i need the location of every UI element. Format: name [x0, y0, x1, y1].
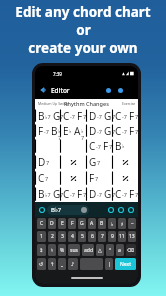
staticText: B [100, 220, 104, 227]
button[interactable]: ♯ [118, 218, 126, 229]
staticText: or [76, 21, 91, 39]
staticText: G [53, 187, 60, 201]
button[interactable]: D [86, 108, 112, 123]
button[interactable]: F [86, 170, 112, 186]
button[interactable]: Action 0 [106, 205, 116, 215]
staticText: G [104, 187, 112, 201]
button[interactable]: D [86, 123, 112, 138]
button[interactable]: F [68, 218, 76, 229]
button[interactable]: C [112, 108, 138, 123]
button[interactable]: △ [96, 244, 104, 256]
staticText: B♭7 [51, 206, 62, 214]
staticText: D [89, 124, 97, 138]
button[interactable]: C [37, 218, 46, 229]
staticText: B [51, 124, 58, 138]
button[interactable]: ♪ [68, 258, 78, 270]
button[interactable]: Next [115, 258, 136, 270]
button[interactable]: C [60, 186, 86, 202]
button[interactable]: B [35, 108, 60, 123]
staticText: 7 [109, 143, 112, 150]
button[interactable] [60, 170, 86, 186]
staticText: add [84, 247, 93, 254]
button[interactable]: Transpose [37, 205, 47, 215]
staticText: 7 [45, 175, 49, 182]
button[interactable]: ⌫ [126, 244, 136, 256]
button[interactable]: 4 [68, 231, 76, 242]
staticText: B [38, 187, 45, 201]
button[interactable]: | [105, 258, 113, 270]
button[interactable]: 13 [128, 231, 136, 242]
staticText: △ [98, 247, 102, 253]
button[interactable]: ♮ [48, 244, 56, 256]
staticText: C [115, 187, 122, 201]
button[interactable]: D [48, 218, 56, 229]
staticText: -7 [70, 113, 75, 120]
button[interactable]: E [58, 218, 66, 229]
button[interactable]: E [60, 123, 86, 138]
button[interactable] [60, 154, 86, 170]
button[interactable]: ⎵ [58, 258, 66, 270]
button[interactable]: 7 [98, 231, 106, 242]
button[interactable]: D [86, 186, 112, 202]
button[interactable]: – [128, 218, 136, 229]
staticText: Exercise [122, 101, 136, 106]
staticText: 7 [135, 128, 138, 135]
button[interactable]: G [78, 218, 86, 229]
staticText: Next [120, 261, 131, 268]
staticText: C [63, 109, 70, 123]
staticText: 7 [135, 113, 138, 120]
button[interactable]: 6 [88, 231, 96, 242]
button[interactable] [80, 258, 103, 270]
button[interactable]: Undo [102, 84, 114, 96]
staticText: 7 [83, 191, 86, 198]
button[interactable]: 9 [108, 231, 116, 242]
button[interactable]: % [58, 244, 66, 256]
button[interactable]: B♭7 [47, 205, 89, 215]
button[interactable]: G [86, 154, 112, 170]
button[interactable]: C [60, 108, 86, 123]
button[interactable]: 3 [58, 231, 66, 242]
staticText: 7 [46, 159, 50, 166]
staticText: F [103, 139, 109, 153]
staticText: G [53, 109, 60, 123]
button[interactable]: C [35, 170, 60, 186]
button[interactable] [60, 138, 86, 154]
button[interactable]: D [35, 154, 60, 170]
button[interactable]: Action 2 [126, 205, 136, 215]
button[interactable]: A [88, 218, 96, 229]
button[interactable]: ↺ [37, 258, 46, 270]
staticText: 7 [83, 113, 86, 120]
staticText: ♪ [71, 261, 75, 267]
staticText: F [129, 124, 135, 138]
button[interactable] [112, 170, 138, 186]
button[interactable]: C [86, 138, 112, 154]
button[interactable]: ↑ [48, 258, 56, 270]
button[interactable]: B [112, 138, 138, 154]
button[interactable]: Back [37, 84, 49, 96]
button[interactable]: ⌀ [116, 244, 124, 256]
button[interactable]: ° [106, 244, 114, 256]
staticText: ♭7 [58, 128, 60, 141]
staticText: -7 [97, 191, 102, 198]
button[interactable]: 2 [48, 231, 56, 242]
button[interactable]: sus [68, 244, 80, 256]
button[interactable]: 5 [78, 231, 86, 242]
button[interactable]: 11 [118, 231, 126, 242]
button[interactable]: ↕ [37, 244, 46, 256]
button[interactable]: add [82, 244, 94, 256]
button[interactable]: C [112, 123, 138, 138]
staticText: ° [109, 247, 112, 254]
button[interactable]: F [35, 123, 60, 138]
button[interactable]: 1 [37, 231, 46, 242]
staticText: -7 [122, 113, 127, 120]
button[interactable]: B [35, 186, 60, 202]
button[interactable] [35, 138, 60, 154]
button[interactable]: Action 1 [116, 205, 126, 215]
staticText: ↕ [39, 247, 44, 253]
button[interactable]: Save [114, 84, 126, 96]
button[interactable]: B [98, 218, 106, 229]
button[interactable]: ♭ [108, 218, 116, 229]
button[interactable] [112, 154, 138, 170]
button[interactable]: C [112, 186, 138, 202]
staticText: Medium Up Swing [38, 101, 69, 106]
